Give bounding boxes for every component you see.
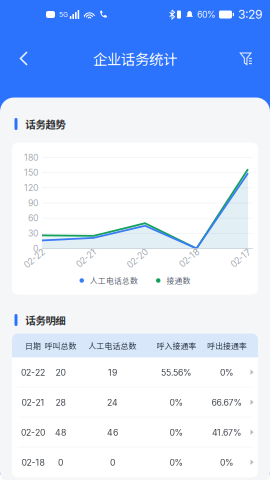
- staticText: 46: [107, 427, 118, 438]
- staticText: 话务趋势: [25, 116, 65, 132]
- staticText: 02-22: [21, 367, 45, 378]
- staticText: 5G: [59, 10, 68, 19]
- staticText: 0: [58, 457, 63, 468]
- staticText: 02-22: [23, 255, 47, 266]
- staticText: 呼出接通率: [207, 340, 247, 351]
- staticText: 20: [55, 367, 65, 378]
- staticText: 人工电话总数: [90, 275, 138, 286]
- staticText: 0%: [220, 457, 234, 468]
- button[interactable]: 02-21: [12, 387, 258, 417]
- staticText: 60%: [197, 9, 216, 20]
- staticText: 28: [55, 397, 65, 408]
- staticText: 90: [28, 198, 38, 208]
- staticText: 180: [24, 152, 38, 163]
- button[interactable]: 02-22: [12, 357, 258, 387]
- staticText: 0%: [169, 427, 183, 438]
- staticText: 02-20: [126, 255, 150, 266]
- staticText: 19: [108, 367, 117, 378]
- button[interactable]: 02-18: [12, 447, 258, 477]
- staticText: 0%: [169, 397, 183, 408]
- staticText: 企业话务统计: [93, 48, 177, 69]
- staticText: 3:29: [238, 7, 262, 22]
- staticText: 02-18: [178, 255, 201, 266]
- staticText: 48: [55, 427, 66, 438]
- staticText: 55.56%: [161, 367, 192, 378]
- staticText: 150: [24, 167, 38, 178]
- staticText: 接通数: [166, 275, 190, 286]
- button[interactable]: Back: [7, 41, 41, 75]
- staticText: 60: [28, 213, 38, 223]
- staticText: 0%: [220, 367, 234, 378]
- staticText: 02-20: [21, 427, 45, 438]
- staticText: 02-18: [21, 457, 44, 468]
- button[interactable]: Filter: [229, 41, 263, 75]
- staticText: 0: [33, 243, 38, 254]
- staticText: 0%: [169, 457, 183, 468]
- staticText: 120: [24, 183, 38, 193]
- staticText: 66.67%: [211, 397, 242, 408]
- button[interactable]: 02-20: [12, 417, 258, 447]
- staticText: 呼入接通率: [156, 340, 196, 351]
- staticText: 呼叫总数: [44, 340, 76, 351]
- staticText: 02-17: [230, 255, 253, 266]
- staticText: 30: [28, 228, 38, 239]
- staticText: 人工电话总数: [88, 340, 136, 351]
- staticText: 日期: [25, 340, 41, 351]
- staticText: 02-21: [75, 255, 98, 266]
- staticText: 02-21: [21, 397, 44, 408]
- staticText: 0: [110, 457, 115, 468]
- staticText: 41.67%: [212, 427, 242, 438]
- staticText: 24: [107, 397, 118, 408]
- staticText: 话务明细: [25, 312, 65, 328]
